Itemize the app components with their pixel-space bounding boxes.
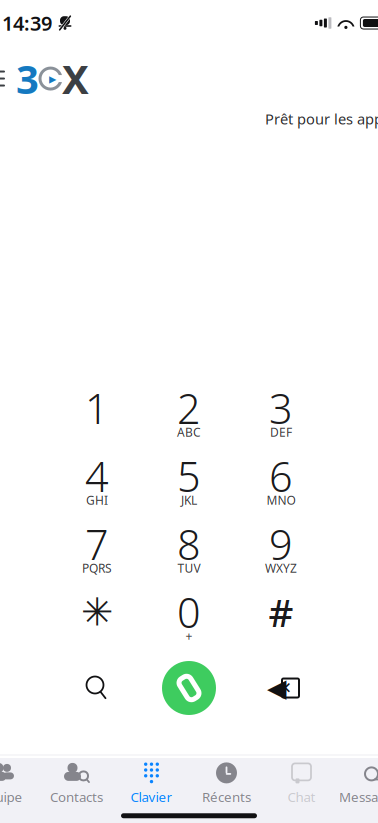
staticText: X [62, 52, 89, 105]
button[interactable]: Clavier [114, 761, 189, 805]
staticText: ✕ [278, 679, 291, 697]
staticText: Équipe [0, 788, 22, 806]
staticText: 3 [269, 381, 293, 435]
staticText: DEF [270, 424, 292, 440]
staticText: 9 [269, 517, 293, 571]
button[interactable]: 6 [235, 450, 327, 514]
staticText: Contacts [50, 788, 103, 806]
button[interactable]: 4 [51, 450, 143, 514]
button[interactable]: 9 [235, 518, 327, 582]
staticText: MNO [266, 492, 295, 508]
button[interactable]: 0 [143, 586, 235, 650]
button[interactable]: 3 [235, 382, 327, 446]
staticText: PQRS [82, 560, 112, 576]
staticText: Récents [202, 788, 251, 806]
staticText: TUV [177, 560, 200, 576]
staticText: Chat [287, 788, 315, 806]
staticText: # [268, 586, 293, 638]
staticText: Messagerie v... [339, 788, 378, 806]
button[interactable]: 7 [51, 518, 143, 582]
button[interactable]: 2 [143, 382, 235, 446]
staticText: 2 [177, 381, 201, 435]
staticText: WXYZ [265, 560, 297, 576]
staticText: 8 [177, 517, 201, 571]
button[interactable]: 8 [143, 518, 235, 582]
button[interactable]: Supprimer [235, 656, 327, 720]
staticText: 6 [269, 449, 293, 503]
button[interactable]: Rechercher [51, 656, 143, 720]
button[interactable]: Menu [0, 64, 7, 94]
staticText: ABC [177, 424, 201, 440]
staticText: 3 [16, 52, 39, 105]
staticText: GHI [86, 492, 108, 508]
staticText: Clavier [130, 788, 172, 806]
staticText: 0 [177, 585, 201, 639]
staticText: + [185, 628, 192, 644]
button[interactable]: 1 [51, 382, 143, 446]
staticText: 1 [85, 381, 109, 435]
button[interactable]: Chat [264, 761, 339, 805]
button[interactable]: Équipe [0, 761, 39, 805]
staticText: 5 [177, 449, 201, 503]
staticText: Prêt pour les appels [265, 109, 378, 129]
staticText: ▸ [49, 70, 56, 87]
button[interactable]: # [235, 586, 327, 650]
staticText: 14:39 [2, 10, 52, 36]
staticText: ◀ [267, 674, 286, 702]
staticText: 4 [85, 449, 109, 503]
button[interactable]: ✳ [51, 586, 143, 650]
button[interactable]: Contacts [39, 761, 114, 805]
button[interactable]: 5 [143, 450, 235, 514]
staticText: 7 [85, 517, 109, 571]
button[interactable]: Récents [189, 761, 264, 805]
staticText: ✳ [81, 590, 113, 634]
button[interactable]: Appeler [143, 656, 235, 720]
staticText: JKL [181, 492, 197, 508]
button[interactable]: 4 [339, 761, 378, 805]
